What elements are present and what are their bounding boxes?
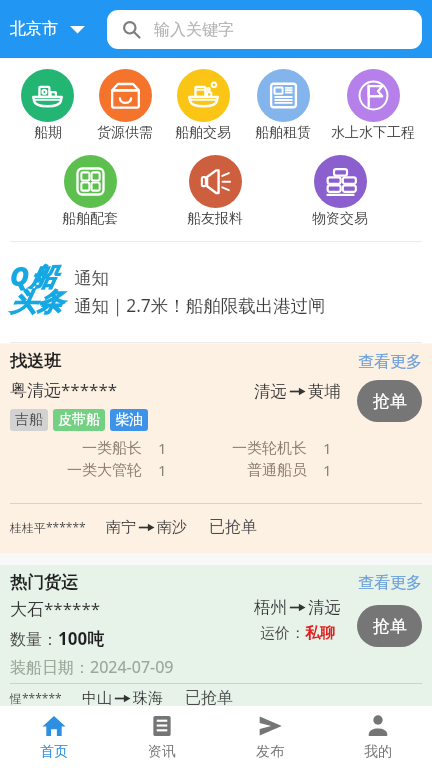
- button[interactable]: 查看更多: [358, 352, 422, 372]
- staticText: 梧州: [254, 597, 287, 618]
- button[interactable]: 资讯: [108, 706, 216, 768]
- staticText: 黄埔: [308, 381, 341, 402]
- staticText: 桂桂平******: [10, 519, 86, 535]
- staticText: 船期: [34, 124, 62, 142]
- staticText: 查看更多: [358, 352, 422, 372]
- staticText: 首页: [40, 743, 68, 761]
- button[interactable]: Q船 头条: [0, 242, 432, 342]
- staticText: 发布: [256, 743, 284, 761]
- staticText: 1: [158, 438, 165, 458]
- staticText: 装船日期：2024-07-09: [10, 656, 174, 678]
- staticText: 清远: [308, 597, 341, 618]
- staticText: 北京市: [10, 19, 58, 39]
- staticText: 皮带船: [58, 411, 100, 429]
- button[interactable]: 发布: [216, 706, 324, 768]
- staticText: 1: [323, 460, 330, 480]
- staticText: 船舶交易: [175, 124, 231, 142]
- staticText: 通知: [74, 267, 109, 289]
- button[interactable]: 我的: [324, 706, 432, 768]
- staticText: 资讯: [148, 743, 176, 761]
- staticText: 一类大管轮: [67, 461, 142, 480]
- staticText: 1: [158, 460, 165, 480]
- staticText: 数量：: [10, 630, 58, 650]
- staticText: 船舶配套: [62, 210, 118, 228]
- staticText: 一类轮机长: [232, 439, 307, 458]
- staticText: 大石******: [10, 597, 101, 620]
- button[interactable]: 水上水下工程: [331, 69, 415, 142]
- staticText: 我的: [364, 743, 392, 761]
- button[interactable]: 北京市: [8, 13, 87, 45]
- staticText: 物资交易: [312, 210, 368, 228]
- button[interactable]: 粤清远******: [0, 372, 432, 431]
- staticText: 普通船员: [247, 461, 307, 480]
- button[interactable]: 首页: [0, 706, 108, 768]
- button[interactable]: 惺******: [0, 684, 432, 706]
- staticText: 粤清远******: [10, 378, 118, 401]
- button[interactable]: 船舶交易: [175, 69, 231, 142]
- staticText: 南宁: [106, 518, 136, 537]
- button[interactable]: 桂桂平******: [0, 504, 432, 553]
- button[interactable]: 抢单: [357, 605, 422, 647]
- staticText: 私聊: [305, 624, 335, 643]
- staticText: 1: [323, 438, 330, 458]
- staticText: 已抢单: [185, 688, 233, 706]
- staticText: 运价：: [260, 624, 305, 643]
- staticText: 货源供需: [97, 124, 153, 142]
- staticText: 船舶租赁: [255, 124, 311, 142]
- button[interactable]: 船舶配套: [62, 155, 118, 228]
- staticText: 中山: [82, 689, 112, 706]
- staticText: 热门货运: [10, 572, 78, 593]
- button[interactable]: 物资交易: [312, 155, 368, 228]
- button[interactable]: 抢单: [357, 380, 422, 422]
- staticText: Q船 头条: [10, 258, 62, 319]
- staticText: 惺******: [10, 690, 62, 706]
- staticText: 输入关键字: [154, 20, 234, 40]
- staticText: 一类船长: [82, 439, 142, 458]
- button[interactable]: 大石******: [0, 593, 432, 678]
- staticText: 抢单: [373, 391, 407, 412]
- staticText: 南沙: [157, 518, 187, 537]
- staticText: 珠海: [133, 689, 163, 706]
- staticText: 查看更多: [358, 573, 422, 593]
- button[interactable]: 船友报料: [187, 155, 243, 228]
- staticText: 吉船: [15, 411, 43, 429]
- staticText: 100吨: [58, 627, 105, 650]
- button[interactable]: 船期: [21, 69, 74, 142]
- staticText: 抢单: [373, 616, 407, 637]
- button[interactable]: 输入关键字: [107, 10, 422, 49]
- staticText: 找送班: [10, 351, 61, 372]
- button[interactable]: 查看更多: [358, 573, 422, 593]
- staticText: 已抢单: [209, 517, 257, 537]
- button[interactable]: 船舶租赁: [255, 69, 311, 142]
- staticText: 柴油: [115, 411, 143, 429]
- staticText: 水上水下工程: [331, 124, 415, 142]
- staticText: 清远: [254, 381, 287, 402]
- staticText: 通知｜2.7米！船舶限载出港过闸: [74, 293, 326, 317]
- staticText: 船友报料: [187, 210, 243, 228]
- button[interactable]: 货源供需: [97, 69, 153, 142]
